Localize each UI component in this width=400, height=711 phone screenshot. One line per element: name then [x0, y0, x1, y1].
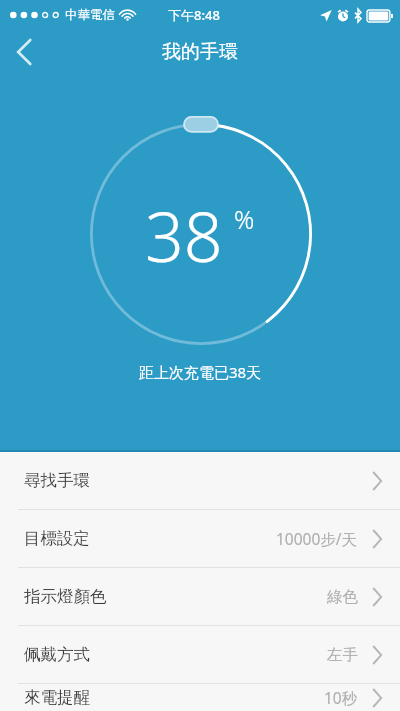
staticText: 綠色: [327, 587, 358, 607]
button[interactable]: 指示燈顏色: [0, 568, 400, 625]
button[interactable]: 尋找手環: [0, 452, 400, 509]
staticText: 10000步/天: [276, 528, 358, 549]
staticText: 來電提醒: [24, 687, 90, 708]
staticText: 尋找手環: [24, 470, 90, 491]
staticText: 佩戴方式: [24, 644, 90, 665]
staticText: 左手: [327, 645, 358, 665]
button[interactable]: Back: [0, 28, 48, 76]
staticText: 距上次充電已38天: [0, 362, 400, 382]
staticText: 指示燈顏色: [24, 586, 107, 607]
staticText: 我的手環: [0, 40, 400, 64]
button[interactable]: 來電提醒: [0, 684, 400, 711]
button[interactable]: 目標設定: [0, 510, 400, 567]
staticText: 目標設定: [24, 528, 90, 549]
staticText: 中華電信: [65, 7, 115, 23]
staticText: 下午8:48: [168, 6, 220, 24]
staticText: %: [234, 202, 255, 236]
staticText: 38: [145, 189, 223, 282]
staticText: 10秒: [324, 687, 358, 708]
button[interactable]: 佩戴方式: [0, 626, 400, 683]
